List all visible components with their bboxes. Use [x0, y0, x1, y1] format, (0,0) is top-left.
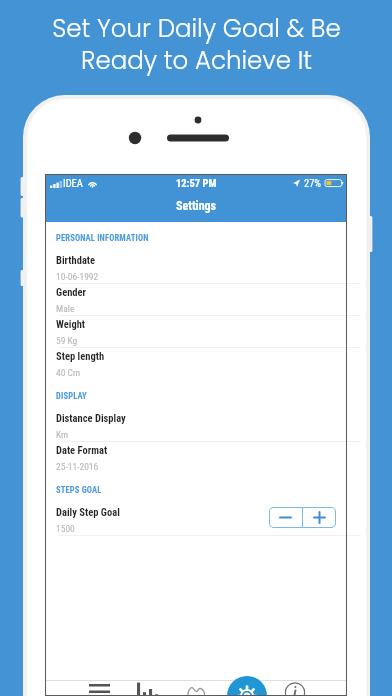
button[interactable]: Distance Display	[45, 410, 347, 442]
staticText: 27%	[304, 177, 322, 189]
button[interactable]: Gender	[45, 284, 347, 316]
staticText: Ready to Achieve It	[81, 43, 312, 77]
button[interactable]: Birthdate	[45, 252, 347, 284]
staticText: 12:57 PM	[176, 177, 217, 189]
button[interactable]: Statistics	[125, 681, 169, 696]
staticText: Weight	[56, 318, 86, 330]
button[interactable]: Decrease	[269, 507, 302, 528]
staticText: 1500	[56, 523, 75, 534]
button[interactable]: Weight	[45, 316, 347, 348]
button[interactable]: Menu	[77, 681, 121, 696]
staticText: IDEA	[63, 177, 83, 189]
button[interactable]: Info	[273, 681, 317, 696]
button[interactable]: Activity	[174, 681, 218, 696]
button[interactable]: Settings	[227, 676, 267, 696]
button[interactable]: Settings tab	[224, 681, 268, 696]
staticText: 25-11-2016	[56, 461, 99, 472]
button[interactable]: Date Format	[45, 442, 347, 474]
staticText: STEPS GOAL	[56, 485, 102, 495]
button[interactable]: Increase	[303, 507, 336, 528]
staticText: Daily Step Goal	[56, 506, 120, 518]
staticText: DISPLAY	[56, 391, 87, 401]
staticText: 10-06-1992	[56, 271, 99, 282]
staticText: 59 Kg	[56, 335, 78, 346]
staticText: PERSONAL INFORMATION	[56, 233, 149, 243]
staticText: Km	[56, 429, 69, 440]
staticText: Settings	[176, 199, 217, 213]
staticText: Male	[56, 303, 75, 314]
staticText: 40 Cm	[56, 367, 81, 378]
staticText: Birthdate	[56, 254, 96, 266]
staticText: Step length	[56, 350, 105, 362]
staticText: Set Your Daily Goal & Be	[52, 11, 341, 45]
staticText: Gender	[56, 286, 87, 298]
staticText: Date Format	[56, 444, 108, 456]
staticText: Distance Display	[56, 412, 126, 424]
button[interactable]: Step length	[45, 348, 347, 380]
